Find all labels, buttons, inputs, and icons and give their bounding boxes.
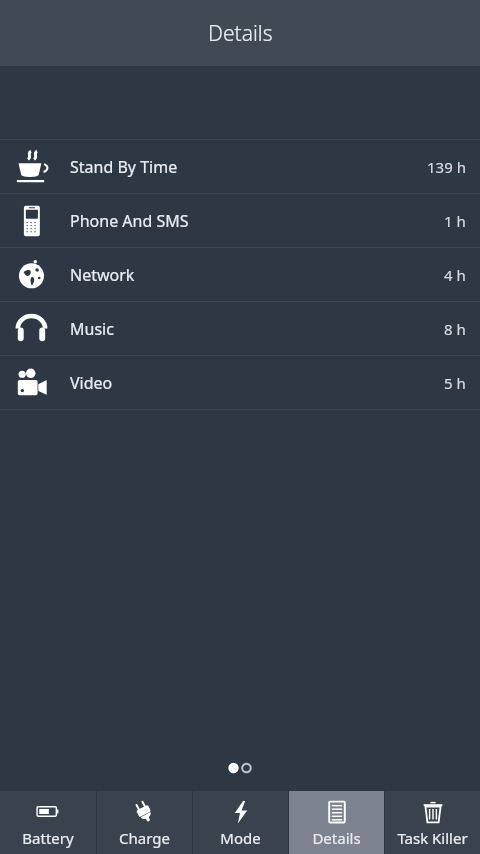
staticText: 4 h (444, 265, 466, 285)
button[interactable]: Mode (193, 791, 288, 854)
staticText: Phone And SMS (70, 210, 189, 232)
staticText: Stand By Time (70, 156, 178, 178)
button[interactable]: Battery (0, 791, 96, 854)
staticText: Details (208, 19, 273, 48)
staticText: 5 h (444, 373, 466, 393)
button[interactable]: Charge (97, 791, 192, 854)
staticText: 1 h (444, 211, 466, 231)
button[interactable]: Details (289, 791, 384, 854)
button[interactable]: Task Killer (385, 791, 480, 854)
staticText: Charge (119, 828, 170, 848)
staticText: 8 h (444, 319, 466, 339)
staticText: 139 h (427, 157, 466, 177)
button[interactable]: Stand By Time (0, 140, 480, 193)
staticText: Video (70, 372, 113, 394)
staticText: Details (312, 828, 361, 848)
staticText: Task Killer (397, 828, 468, 848)
button[interactable]: Network (0, 248, 480, 301)
staticText: Mode (220, 828, 261, 848)
button[interactable]: Phone And SMS (0, 194, 480, 247)
staticText: Music (70, 318, 114, 340)
button[interactable]: Music (0, 302, 480, 355)
button[interactable]: Video (0, 356, 480, 409)
staticText: Network (70, 264, 135, 286)
staticText: Battery (22, 828, 74, 848)
